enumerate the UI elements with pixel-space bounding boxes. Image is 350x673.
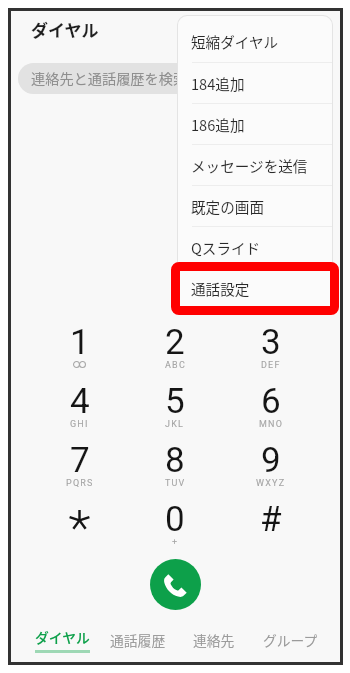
staticText: PQRS xyxy=(66,478,94,489)
button[interactable]: 1 xyxy=(32,325,127,384)
button[interactable]: 4 xyxy=(32,384,127,443)
button[interactable]: グループ xyxy=(252,619,328,661)
button[interactable]: 連絡先 xyxy=(176,619,252,661)
staticText: ダイヤル xyxy=(35,627,90,647)
staticText: 4 xyxy=(70,381,90,422)
staticText: ABC xyxy=(165,360,186,371)
button[interactable]: ダイヤル xyxy=(25,619,100,661)
button[interactable]: 186追加 xyxy=(178,104,332,144)
button[interactable]: 7 xyxy=(32,443,127,502)
staticText: JKL xyxy=(165,419,185,430)
staticText: MNO xyxy=(259,419,284,430)
staticText: 既定の画面 xyxy=(191,196,264,217)
staticText: 1 xyxy=(70,322,90,363)
button[interactable]: 9 xyxy=(223,443,319,502)
button[interactable]: 2 xyxy=(127,325,223,384)
staticText: 通話設定 xyxy=(191,278,250,299)
staticText: 通話履歴 xyxy=(110,630,166,650)
staticText: # xyxy=(260,499,282,540)
staticText: 9 xyxy=(261,440,281,481)
button[interactable]: # xyxy=(223,502,319,561)
button[interactable]: 短縮ダイヤル xyxy=(178,21,332,62)
button[interactable]: 184追加 xyxy=(178,63,332,103)
button[interactable]: 既定の画面 xyxy=(178,186,332,226)
staticText: 5 xyxy=(165,381,185,422)
staticText: 0 xyxy=(165,499,185,540)
staticText: 2 xyxy=(165,322,185,363)
staticText: 短縮ダイヤル xyxy=(191,31,279,52)
staticText: DEF xyxy=(261,360,281,371)
button[interactable]: 0 xyxy=(127,502,223,561)
button[interactable]: メッセージを送信 xyxy=(178,145,332,185)
button[interactable]: 6 xyxy=(223,384,319,443)
button[interactable] xyxy=(32,502,127,561)
button[interactable]: 5 xyxy=(127,384,223,443)
button[interactable]: 通話履歴 xyxy=(100,619,176,661)
staticText: 6 xyxy=(261,381,281,422)
button[interactable]: 3 xyxy=(223,325,319,384)
button[interactable]: Qスライド xyxy=(178,227,332,267)
staticText: ダイヤル xyxy=(31,17,99,42)
staticText: グループ xyxy=(263,630,318,650)
staticText: 8 xyxy=(165,440,185,481)
button[interactable]: 連絡先と通話履歴を検索 xyxy=(18,63,333,94)
staticText: 7 xyxy=(70,440,90,481)
staticText: 186追加 xyxy=(191,114,245,135)
staticText: WXYZ xyxy=(256,478,286,489)
staticText: 連絡先 xyxy=(193,630,235,650)
button[interactable]: 通話設定 xyxy=(178,268,332,308)
button[interactable]: 8 xyxy=(127,443,223,502)
staticText: GHI xyxy=(70,419,89,430)
staticText: メッセージを送信 xyxy=(191,155,308,176)
button[interactable]: Call xyxy=(150,559,201,610)
staticText: 3 xyxy=(261,322,281,363)
staticText: + xyxy=(172,537,179,548)
staticText: Qスライド xyxy=(191,237,261,258)
staticText: TUV xyxy=(165,478,186,489)
staticText: 連絡先と通話履歴を検索 xyxy=(31,68,188,89)
staticText: 184追加 xyxy=(191,73,245,94)
